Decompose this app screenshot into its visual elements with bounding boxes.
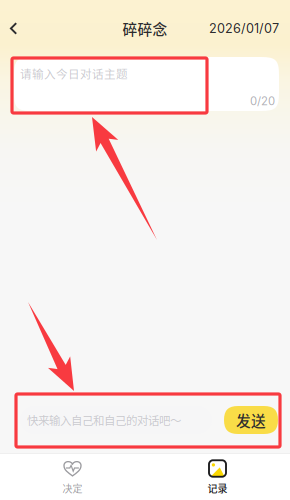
button[interactable]: Back	[0, 12, 29, 45]
button[interactable]: 记录	[145, 453, 290, 495]
staticText: 决定	[62, 481, 82, 495]
staticText: 记录	[207, 481, 227, 495]
staticText: 2026/01/07	[209, 21, 279, 36]
staticText: 碎碎念	[122, 18, 167, 39]
staticText: 请输入今日对话主题	[20, 65, 128, 82]
button[interactable]: 发送	[224, 406, 278, 434]
button[interactable]: 决定	[0, 453, 145, 495]
staticText: 快来输入自己和自己的对话吧～	[27, 412, 181, 428]
staticText: 发送	[236, 409, 266, 431]
staticText: 0/20	[250, 94, 275, 108]
